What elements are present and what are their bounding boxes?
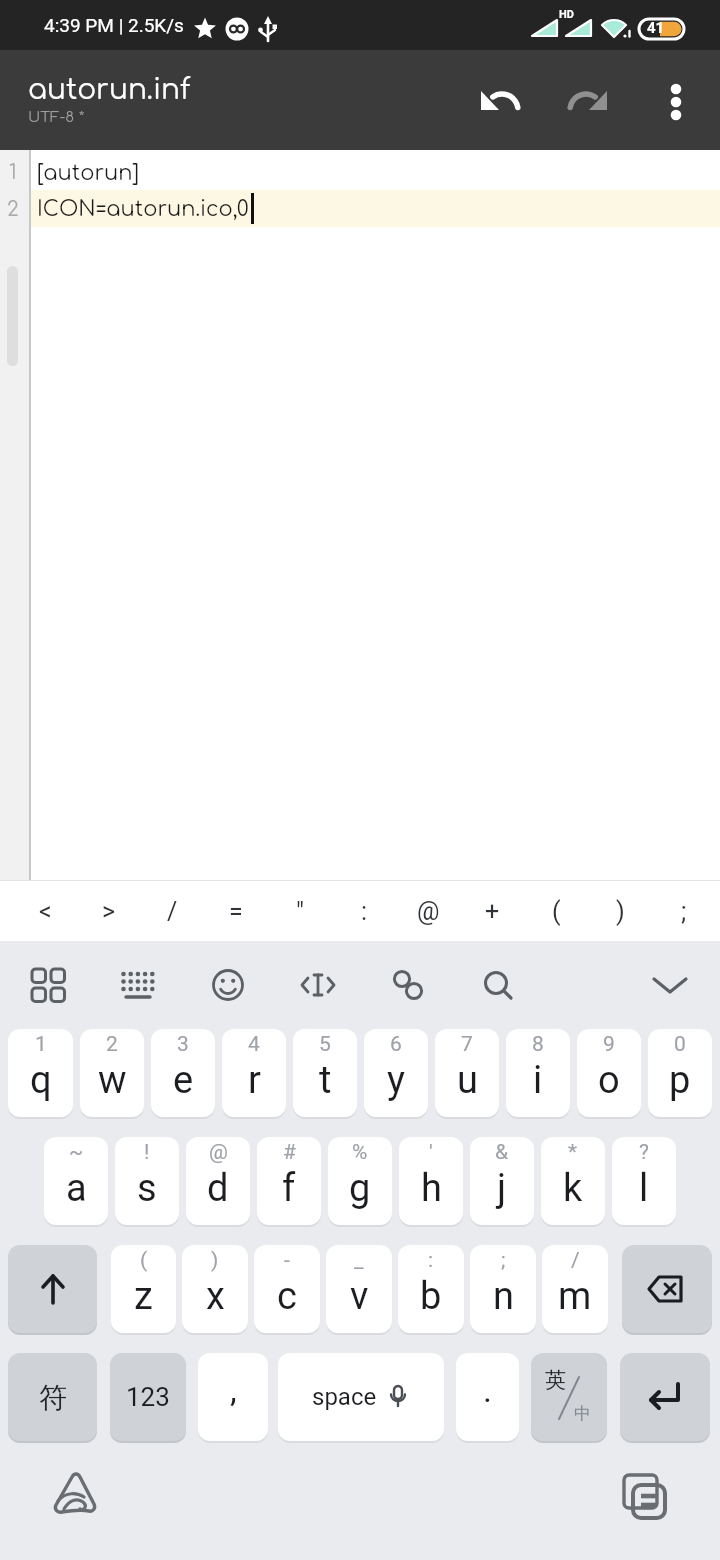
button[interactable] [299, 966, 337, 1004]
staticText: ICON=autorun.ico,0 [37, 197, 249, 220]
button[interactable]: # [257, 1137, 321, 1225]
staticText: k [563, 1166, 583, 1211]
button[interactable]: 3 [151, 1029, 215, 1117]
button[interactable]: _ [326, 1245, 392, 1333]
staticText: q [30, 1058, 52, 1103]
staticText: ; [501, 1248, 506, 1273]
button[interactable] [620, 1353, 710, 1441]
button[interactable]: ( [524, 881, 588, 941]
button[interactable] [651, 966, 689, 1004]
button[interactable] [389, 966, 427, 1004]
button[interactable] [29, 966, 67, 1004]
button[interactable]: / [140, 881, 204, 941]
button[interactable]: > [77, 881, 140, 941]
staticText: t [319, 1058, 332, 1103]
button[interactable]: ~ [44, 1137, 108, 1225]
staticText: ( [140, 1248, 148, 1273]
staticText: space [312, 1383, 377, 1411]
button[interactable]: / [542, 1245, 608, 1333]
button[interactable]: 9 [577, 1029, 641, 1117]
button[interactable]: < [14, 881, 77, 941]
staticText: u [457, 1058, 478, 1103]
button[interactable]: ; [652, 881, 716, 941]
button[interactable]: : [398, 1245, 464, 1333]
button[interactable] [650, 72, 702, 124]
staticText: a [66, 1166, 87, 1211]
staticText: UTF-8 * [28, 109, 85, 126]
button[interactable]: 6 [364, 1029, 428, 1117]
button[interactable]: ICON=autorun.ico,0 [31, 190, 720, 227]
button[interactable]: - [254, 1245, 320, 1333]
button[interactable] [471, 72, 527, 128]
button[interactable]: . [456, 1353, 519, 1441]
staticText: v [350, 1274, 369, 1319]
button[interactable]: = [204, 881, 268, 941]
button[interactable]: 2 [80, 1029, 144, 1117]
button[interactable]: * [541, 1137, 605, 1225]
button[interactable]: 123 [110, 1353, 186, 1441]
staticText: m [558, 1274, 592, 1319]
staticText: + [485, 897, 500, 926]
button[interactable] [559, 72, 615, 128]
button[interactable]: ) [588, 881, 652, 941]
button[interactable]: @ [186, 1137, 250, 1225]
button[interactable] [119, 966, 157, 1004]
staticText: b [420, 1274, 442, 1319]
button[interactable]: : [332, 881, 396, 941]
button[interactable]: 8 [506, 1029, 570, 1117]
button[interactable]: 符 [8, 1353, 97, 1441]
button[interactable]: ; [470, 1245, 536, 1333]
staticText: < [39, 897, 52, 926]
button[interactable]: & [470, 1137, 534, 1225]
button[interactable]: 1 [8, 1029, 73, 1117]
button[interactable]: 英 [531, 1353, 607, 1441]
button[interactable]: space [278, 1353, 444, 1441]
staticText: / [167, 897, 178, 926]
button[interactable]: ? [612, 1137, 676, 1225]
button[interactable]: " [268, 881, 332, 941]
staticText: _ [354, 1248, 364, 1273]
button[interactable] [52, 1471, 98, 1517]
staticText: g [349, 1166, 371, 1211]
button[interactable]: 5 [293, 1029, 357, 1117]
button[interactable]: , [198, 1353, 268, 1441]
staticText: c [277, 1274, 297, 1319]
staticText: 4:39 PM | 2.5K/s [44, 14, 184, 36]
staticText: 中 [574, 1403, 591, 1424]
staticText: z [134, 1274, 153, 1319]
staticText: : [428, 1248, 434, 1273]
staticText: ~ [69, 1140, 84, 1165]
button[interactable] [8, 1245, 97, 1333]
button[interactable]: ' [399, 1137, 463, 1225]
staticText: @ [417, 897, 440, 926]
button[interactable]: ( [111, 1245, 176, 1333]
button[interactable]: + [460, 881, 524, 941]
staticText: h [421, 1166, 442, 1211]
button[interactable]: ! [115, 1137, 179, 1225]
button[interactable] [479, 966, 517, 1004]
staticText: / [571, 1248, 580, 1273]
button[interactable]: @ [396, 881, 460, 941]
staticText: " [296, 897, 305, 926]
staticText: o [598, 1058, 620, 1103]
staticText: s [137, 1166, 157, 1211]
button[interactable]: 4 [222, 1029, 286, 1117]
button[interactable]: ) [182, 1245, 248, 1333]
button[interactable]: % [328, 1137, 392, 1225]
staticText: r [248, 1058, 261, 1103]
staticText: : [361, 897, 368, 926]
staticText: , [230, 1370, 237, 1410]
staticText: ; [681, 897, 687, 926]
button[interactable]: 0 [648, 1029, 712, 1117]
staticText: ! [144, 1140, 150, 1165]
staticText: x [206, 1274, 225, 1319]
staticText: 9 [603, 1032, 615, 1057]
button[interactable]: 7 [435, 1029, 499, 1117]
button[interactable] [620, 1469, 668, 1517]
staticText: @ [209, 1140, 228, 1165]
button[interactable] [209, 966, 247, 1004]
staticText: > [102, 897, 116, 926]
button[interactable] [622, 1245, 712, 1333]
staticText: 3 [177, 1032, 189, 1057]
staticText: d [207, 1166, 229, 1211]
